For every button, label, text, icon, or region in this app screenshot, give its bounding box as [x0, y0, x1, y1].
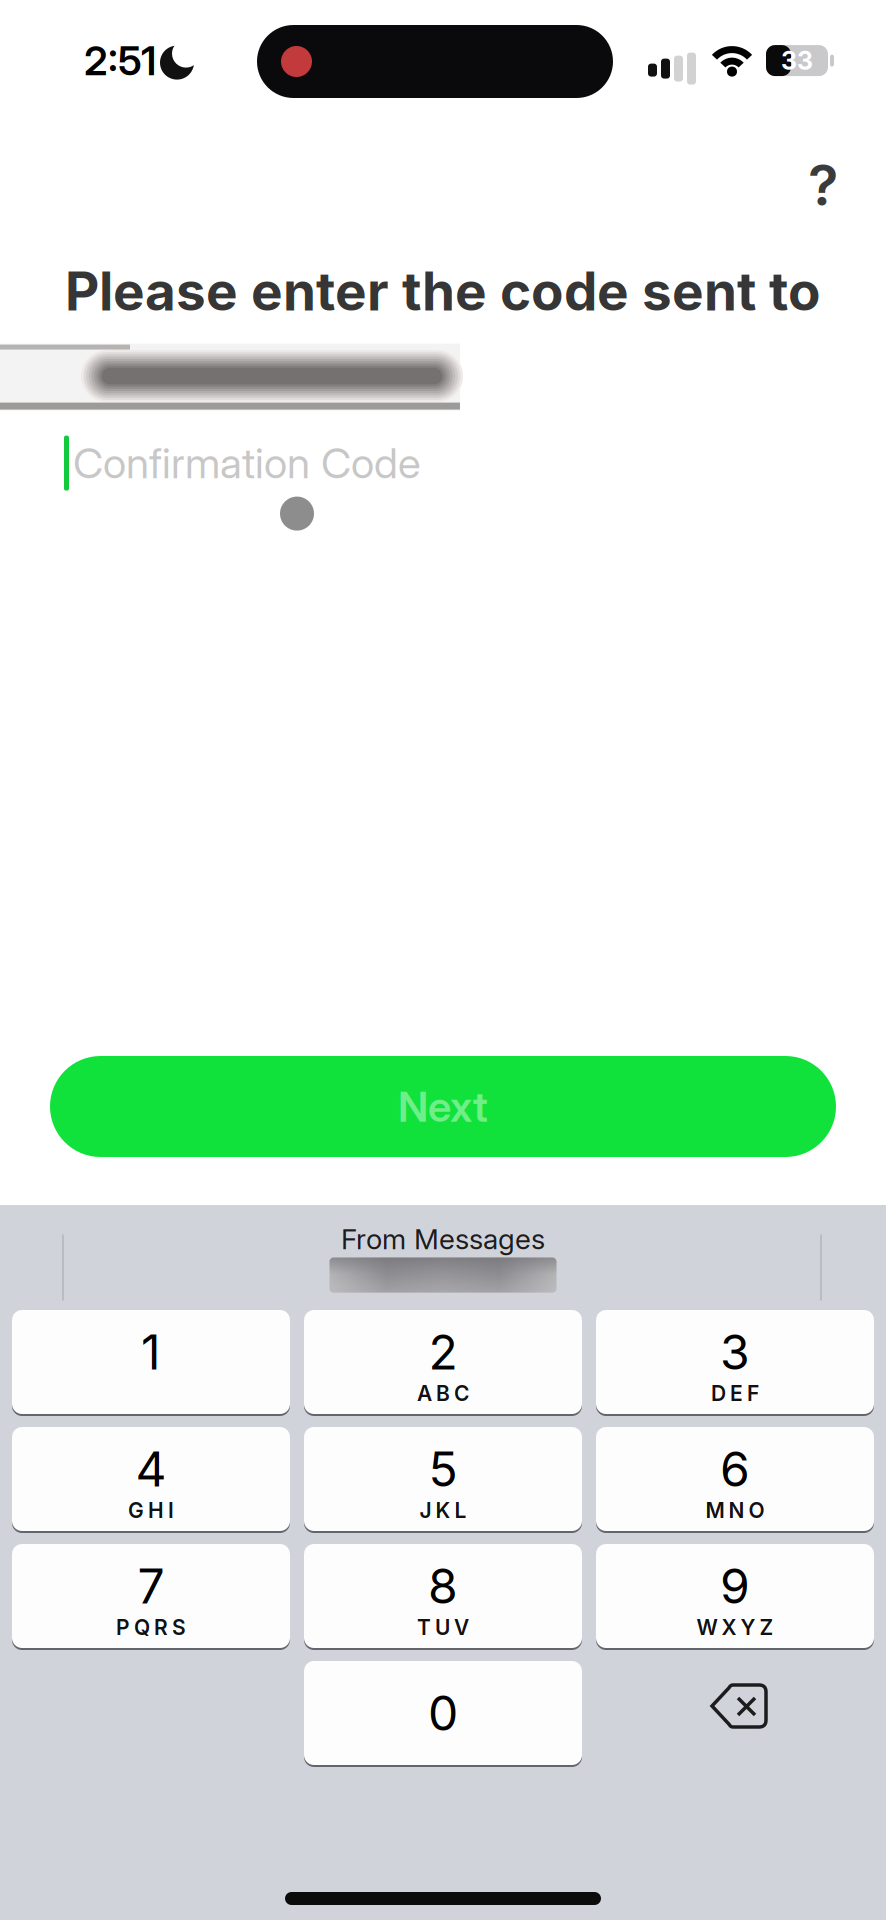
button[interactable]: 6 [596, 1427, 874, 1531]
staticText: Please enter the code sent to [65, 260, 821, 323]
staticText: Next [398, 1082, 488, 1131]
button[interactable]: Autofill code from Messages [329, 1257, 556, 1292]
staticText: 7 [137, 1558, 164, 1614]
staticText: M N O [705, 1498, 764, 1523]
staticText: Confirmation Code [73, 438, 421, 488]
button[interactable]: Next [50, 1056, 836, 1157]
staticText: P Q R S [116, 1615, 186, 1640]
button[interactable]: Help [808, 152, 886, 218]
button[interactable]: 8 [304, 1544, 582, 1648]
staticText: 8 [428, 1558, 458, 1614]
button[interactable]: 5 [304, 1427, 582, 1531]
staticText: ? [808, 152, 838, 218]
button[interactable]: 3 [596, 1310, 874, 1414]
staticText: 33 [781, 46, 813, 75]
staticText: T U V [417, 1615, 469, 1640]
staticText: 2 [428, 1324, 457, 1380]
staticText: From Messages [341, 1222, 545, 1255]
staticText: 4 [135, 1441, 166, 1497]
staticText: 5 [428, 1441, 457, 1497]
staticText: W X Y Z [696, 1615, 773, 1640]
staticText: 2:51 [84, 37, 156, 84]
button[interactable]: 9 [596, 1544, 874, 1648]
staticText: 6 [720, 1441, 750, 1497]
staticText: 0 [428, 1685, 458, 1741]
button[interactable]: Delete [596, 1661, 874, 1765]
button[interactable]: 0 [304, 1661, 582, 1765]
button[interactable]: 4 [12, 1427, 290, 1531]
button[interactable]: 1 [12, 1310, 290, 1414]
staticText: 1 [141, 1324, 161, 1380]
button[interactable]: 7 [12, 1544, 290, 1648]
staticText: G H I [128, 1498, 174, 1523]
button[interactable]: 2 [304, 1310, 582, 1414]
staticText: A B C [417, 1381, 469, 1406]
staticText: D E F [711, 1381, 759, 1406]
staticText: 9 [720, 1558, 750, 1614]
staticText: J K L [419, 1498, 466, 1523]
staticText: 3 [720, 1324, 750, 1380]
